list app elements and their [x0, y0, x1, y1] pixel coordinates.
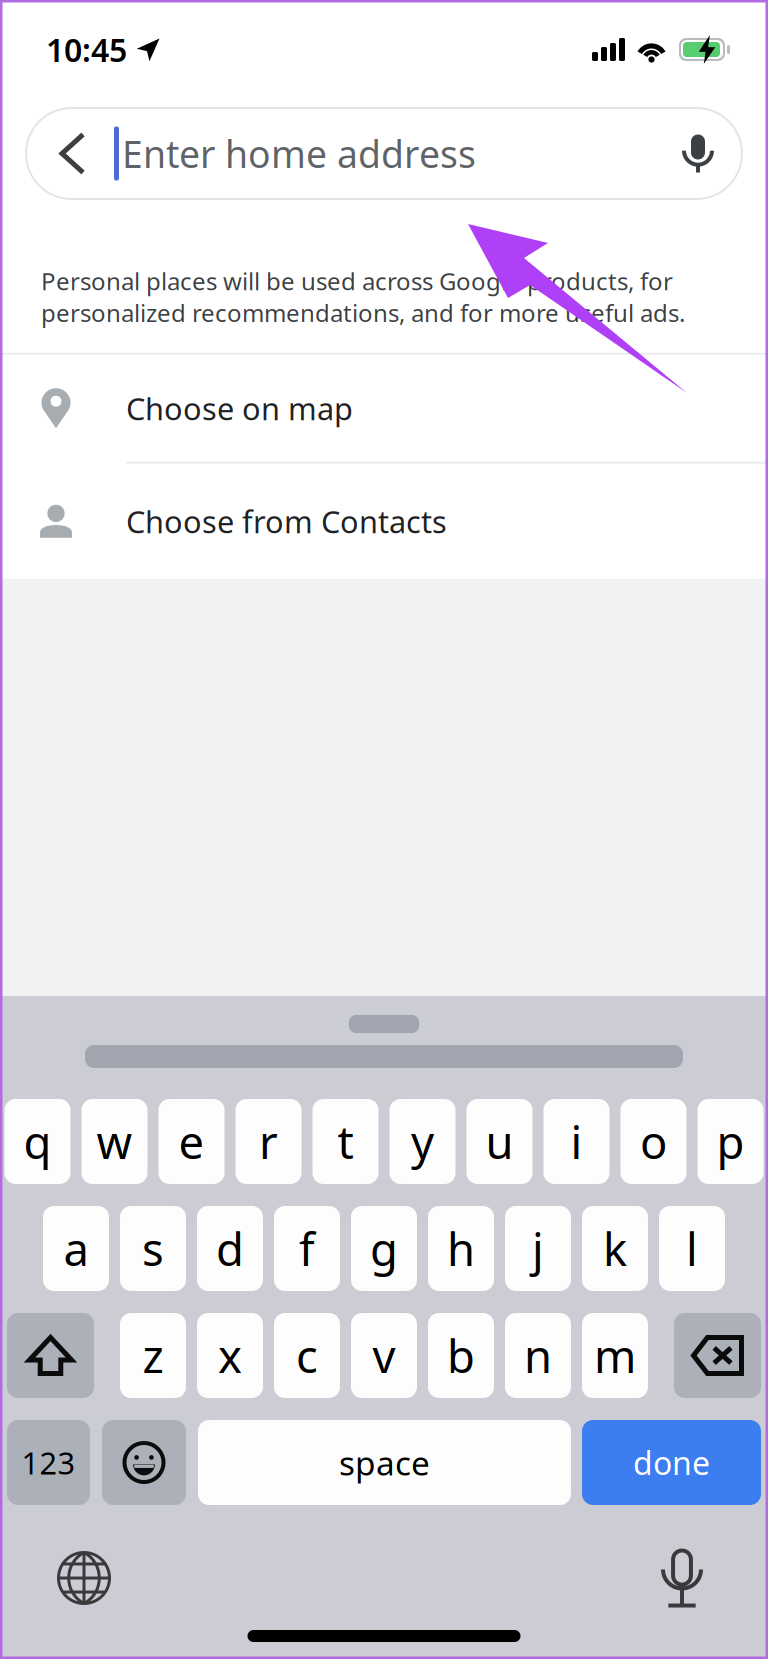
staticText: i	[570, 1111, 582, 1172]
staticText: y	[411, 1111, 434, 1172]
button[interactable]: f	[274, 1206, 340, 1291]
button[interactable]: j	[505, 1206, 571, 1291]
staticText: 10:45	[46, 28, 127, 71]
staticText: n	[524, 1325, 552, 1386]
button[interactable]: done	[582, 1420, 761, 1505]
staticText: p	[716, 1111, 744, 1172]
staticText: space	[339, 1440, 430, 1485]
staticText: t	[337, 1111, 353, 1172]
button[interactable]: k	[582, 1206, 648, 1291]
button[interactable]: w	[81, 1099, 147, 1184]
button[interactable]: 123	[7, 1420, 90, 1505]
button[interactable]: p	[697, 1099, 763, 1184]
staticText: b	[447, 1325, 475, 1386]
button[interactable]: y	[389, 1099, 455, 1184]
staticText: done	[633, 1441, 710, 1484]
staticText: h	[447, 1218, 475, 1279]
button[interactable]: s	[120, 1206, 186, 1291]
button[interactable]: Voice search	[666, 108, 742, 199]
staticText: f	[299, 1218, 315, 1279]
button[interactable]: g	[351, 1206, 417, 1291]
button[interactable]: o	[620, 1099, 686, 1184]
staticText: k	[603, 1218, 627, 1279]
button[interactable]: x	[197, 1313, 263, 1398]
button[interactable]: Shift	[7, 1313, 94, 1398]
staticText: o	[640, 1111, 667, 1172]
staticText: u	[485, 1111, 513, 1172]
button[interactable]: Delete	[674, 1313, 761, 1398]
button[interactable]: v	[351, 1313, 417, 1398]
staticText: e	[178, 1111, 204, 1172]
button[interactable]: r	[235, 1099, 301, 1184]
button[interactable]: h	[428, 1206, 494, 1291]
staticText: g	[370, 1218, 398, 1279]
button[interactable]: q	[4, 1099, 70, 1184]
button[interactable]: Dictate	[596, 1505, 768, 1659]
staticText: m	[594, 1325, 636, 1386]
button[interactable]: b	[428, 1313, 494, 1398]
staticText: w	[96, 1111, 132, 1172]
button[interactable]: Change keyboard	[0, 1505, 168, 1659]
button[interactable]: d	[197, 1206, 263, 1291]
button[interactable]: c	[274, 1313, 340, 1398]
button[interactable]: Choose on map	[0, 355, 768, 462]
staticText: q	[23, 1111, 51, 1172]
staticText: Choose from Contacts	[126, 501, 447, 542]
button[interactable]: Back	[26, 108, 114, 199]
button[interactable]: u	[466, 1099, 532, 1184]
button[interactable]: space	[198, 1420, 571, 1505]
staticText: Choose on map	[126, 388, 353, 429]
button[interactable]: e	[158, 1099, 224, 1184]
button[interactable]: n	[505, 1313, 571, 1398]
button[interactable]: l	[659, 1206, 725, 1291]
staticText: r	[259, 1111, 278, 1172]
staticText: z	[142, 1325, 163, 1386]
button[interactable]: m	[582, 1313, 648, 1398]
staticText: l	[686, 1218, 698, 1279]
button[interactable]: Choose from Contacts	[0, 464, 768, 579]
button[interactable]: t	[312, 1099, 378, 1184]
staticText: 123	[21, 1442, 75, 1483]
button[interactable]: z	[120, 1313, 186, 1398]
staticText: Enter home address	[122, 129, 476, 178]
button[interactable]: i	[543, 1099, 609, 1184]
button[interactable]: a	[43, 1206, 109, 1291]
staticText: v	[372, 1325, 395, 1386]
staticText: Personal places will be used across Goog…	[41, 265, 685, 329]
staticText: j	[532, 1218, 544, 1279]
staticText: s	[142, 1218, 164, 1279]
button[interactable]: Emoji	[102, 1420, 186, 1505]
staticText: d	[216, 1218, 244, 1279]
staticText: c	[296, 1325, 318, 1386]
staticText: x	[218, 1325, 242, 1386]
staticText: a	[63, 1218, 88, 1279]
